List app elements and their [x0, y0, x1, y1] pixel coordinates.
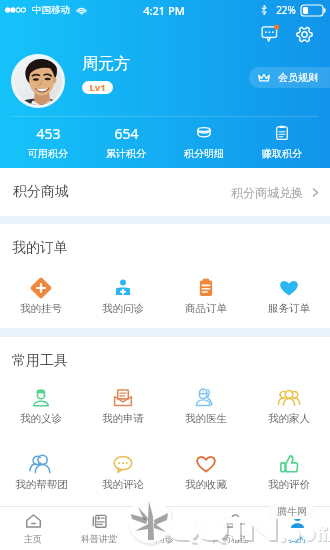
button[interactable]: 商品订单	[164, 277, 247, 315]
staticText: 累计积分	[106, 147, 146, 160]
staticText: 服务订单	[268, 302, 310, 315]
staticText: 问药相连	[213, 533, 249, 544]
staticText: 我的评论	[102, 478, 144, 491]
button[interactable]: 服务订单	[247, 277, 330, 315]
button[interactable]: 我的家人	[247, 387, 330, 425]
staticText: 453	[36, 124, 61, 141]
staticText: 积分明细	[184, 147, 224, 160]
staticText: 我的家人	[268, 412, 310, 425]
staticText: 4:21 PM	[143, 3, 185, 18]
button[interactable]: 我的医生	[164, 387, 247, 425]
staticText: 问诊	[156, 533, 174, 544]
staticText: 我的挂号	[20, 302, 62, 315]
button[interactable]: 我的帮帮团	[0, 453, 82, 491]
staticText: 主页	[24, 533, 42, 544]
button[interactable]: 问诊	[132, 507, 198, 550]
staticText: 中国移动	[32, 4, 70, 16]
staticText: 积分商城	[13, 183, 69, 201]
staticText: 我的评价	[268, 478, 310, 491]
button[interactable]: Settings	[290, 20, 318, 48]
staticText: 22%	[276, 3, 296, 17]
button[interactable]: 积分商城	[0, 168, 330, 216]
button[interactable]: 赚取积分	[243, 124, 321, 160]
button[interactable]: 我的收藏	[164, 453, 247, 491]
button[interactable]: 我的义诊	[0, 387, 82, 425]
staticText: 654	[114, 124, 139, 141]
button[interactable]: 积分明细	[165, 124, 243, 160]
button[interactable]: Avatar	[11, 54, 65, 108]
staticText: 我的问诊	[102, 302, 144, 315]
staticText: 我的订单	[12, 239, 68, 257]
button[interactable]: Messages	[256, 20, 284, 48]
staticText: 我的医生	[185, 412, 227, 425]
staticText: 我的	[288, 533, 306, 544]
button[interactable]: 会员规则	[249, 67, 330, 88]
staticText: 腾牛网	[277, 505, 307, 518]
staticText: 科普讲堂	[81, 533, 117, 544]
staticText: 我的收藏	[185, 478, 227, 491]
button[interactable]: 主页	[0, 507, 66, 550]
staticText: Lv1	[89, 81, 106, 94]
button[interactable]: 654	[87, 124, 165, 160]
staticText: 我的帮帮团	[15, 478, 68, 491]
button[interactable]: Lv1	[82, 81, 113, 94]
staticText: 常用工具	[12, 352, 68, 370]
staticText: 我的义诊	[20, 412, 62, 425]
button[interactable]: 我的问诊	[82, 277, 164, 315]
button[interactable]: 我的申请	[82, 387, 164, 425]
button[interactable]: 我的评论	[82, 453, 164, 491]
staticText: 积分商城兑换	[231, 185, 303, 200]
staticText: 会员规则	[278, 71, 318, 84]
button[interactable]: 问药相连	[198, 507, 264, 550]
staticText: 赚取积分	[262, 147, 302, 160]
button[interactable]: 我的挂号	[0, 277, 82, 315]
button[interactable]: 科普讲堂	[66, 507, 132, 550]
staticText: 商品订单	[185, 302, 227, 315]
button[interactable]: 我的评价	[247, 453, 330, 491]
button[interactable]: 我的	[264, 507, 330, 550]
staticText: 可用积分	[28, 147, 68, 160]
button[interactable]: 453	[9, 124, 87, 160]
staticText: 我的申请	[102, 412, 144, 425]
staticText: 周元方	[82, 54, 130, 74]
